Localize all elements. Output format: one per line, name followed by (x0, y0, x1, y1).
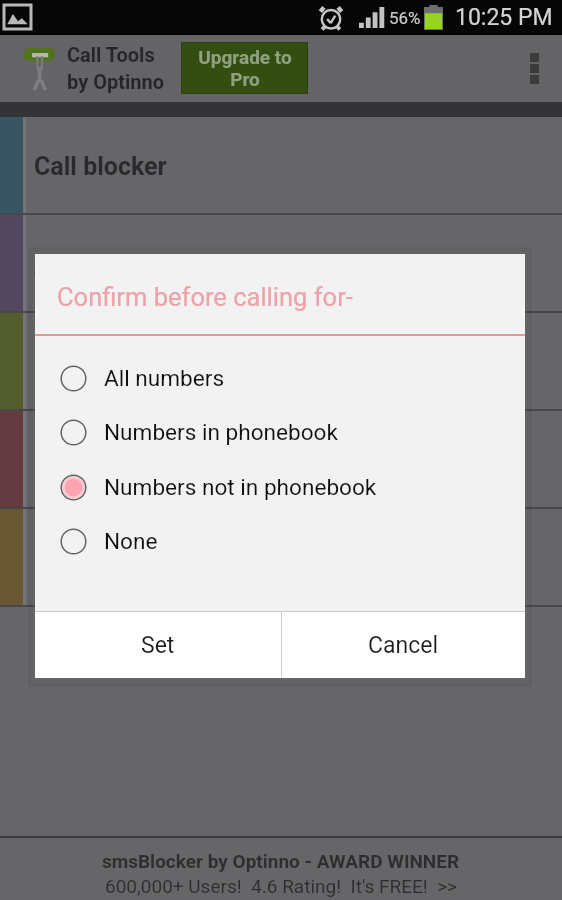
staticText: Set (141, 632, 175, 659)
staticText: Numbers in phonebook (104, 419, 338, 445)
button[interactable]: All numbers (35, 351, 525, 405)
staticText: 56% (389, 8, 421, 28)
staticText: 10:25 PM (455, 4, 553, 31)
button[interactable]: Numbers in phonebook (35, 405, 525, 459)
staticText: by Optinno (67, 70, 164, 93)
button[interactable]: Speed dial (0, 411, 562, 509)
button[interactable]: smsBlocker by Optinno - AWARD WINNER (0, 836, 562, 900)
staticText: Numbers not in phonebook (104, 474, 377, 500)
button[interactable]: Call log (0, 509, 562, 607)
staticText: All numbers (104, 365, 225, 391)
button[interactable]: None (35, 514, 525, 568)
staticText: Call Tools (67, 43, 155, 66)
staticText: None (104, 528, 158, 554)
staticText: Confirm before calling for- (57, 282, 353, 312)
staticText: Upgrade to Pro (198, 46, 292, 91)
button[interactable]: Cancel (282, 612, 525, 678)
button[interactable]: Call blocker (0, 117, 562, 215)
staticText: Speed dial (34, 446, 152, 475)
staticText: Cancel (368, 632, 439, 659)
staticText: smsBlocker by Optinno - AWARD WINNER (102, 850, 460, 872)
staticText: Auto call recorder (34, 250, 235, 279)
staticText: Call confirm (34, 348, 171, 377)
staticText: Call log (34, 544, 119, 573)
button[interactable]: More options (506, 35, 562, 102)
button[interactable]: Upgrade to Pro (182, 43, 307, 93)
button[interactable]: Call confirm (0, 313, 562, 411)
button[interactable]: Auto call recorder (0, 215, 562, 313)
staticText: Call blocker (34, 152, 167, 181)
button[interactable]: Numbers not in phonebook (35, 460, 525, 514)
staticText: 600,000+ Users! 4.6 Rating! It's FREE! >… (105, 875, 458, 897)
button[interactable]: Set (35, 612, 281, 678)
